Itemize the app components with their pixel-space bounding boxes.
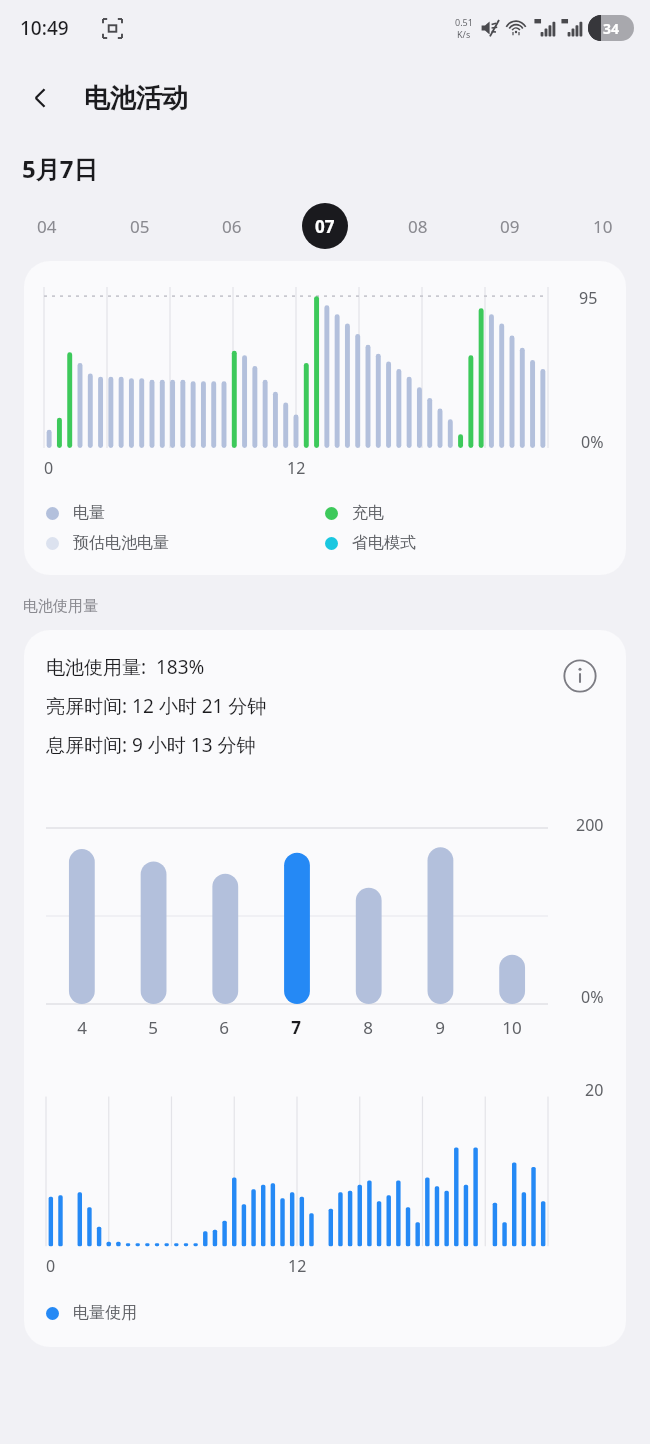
staticText: 12 xyxy=(288,1255,307,1277)
staticText: 95 xyxy=(579,287,598,309)
button[interactable]: 08 xyxy=(395,203,441,249)
staticText: 06 xyxy=(222,215,242,238)
staticText: 电量使用 xyxy=(73,1303,137,1323)
staticText: 0 xyxy=(44,457,54,479)
staticText: 07 xyxy=(315,215,335,238)
button[interactable]: Info xyxy=(558,654,602,698)
staticText: 电量 xyxy=(73,503,105,523)
staticText: 0% xyxy=(581,986,604,1008)
staticText: 0 xyxy=(46,1255,56,1277)
staticText: 亮屏时间: 12 小时 21 分钟 xyxy=(46,693,267,719)
button[interactable]: 05 xyxy=(117,203,163,249)
staticText: 4 xyxy=(77,1016,87,1039)
staticText: 预估电池电量 xyxy=(73,533,169,553)
button[interactable]: 10 xyxy=(580,203,626,249)
staticText: 20 xyxy=(585,1079,604,1101)
staticText: 电池活动 xyxy=(84,82,188,115)
staticText: 10:49 xyxy=(20,15,69,41)
staticText: 0.51 xyxy=(455,16,473,28)
staticText: 5月7日 xyxy=(22,152,98,185)
staticText: 10 xyxy=(593,215,613,238)
staticText: K/s xyxy=(457,28,471,40)
staticText: 12 xyxy=(287,457,306,479)
button[interactable]: 09 xyxy=(487,203,533,249)
staticText: 05 xyxy=(130,215,150,238)
button[interactable]: Back xyxy=(18,75,64,121)
staticText: 6 xyxy=(219,1016,229,1039)
staticText: 充电 xyxy=(352,503,384,523)
staticText: 04 xyxy=(37,215,57,238)
button[interactable]: 电池使用量: 183% xyxy=(24,630,626,1347)
staticText: 9 xyxy=(435,1016,445,1039)
staticText: 息屏时间: 9 小时 13 分钟 xyxy=(46,732,256,758)
button[interactable]: 07 xyxy=(302,203,348,249)
staticText: 08 xyxy=(408,215,428,238)
staticText: 电池使用量 xyxy=(23,597,98,616)
staticText: 5 xyxy=(148,1016,158,1039)
staticText: 省电模式 xyxy=(352,533,416,553)
staticText: 10 xyxy=(502,1016,522,1039)
staticText: 200 xyxy=(576,814,604,836)
button[interactable]: 95 xyxy=(24,261,626,575)
staticText: 09 xyxy=(500,215,520,238)
button[interactable]: 06 xyxy=(209,203,255,249)
button[interactable]: 04 xyxy=(24,203,70,249)
staticText: 8 xyxy=(363,1016,373,1039)
staticText: 0% xyxy=(581,431,604,453)
staticText: 电池使用量: 183% xyxy=(46,654,205,680)
staticText: 7 xyxy=(291,1016,301,1039)
staticText: 34 xyxy=(603,19,620,38)
